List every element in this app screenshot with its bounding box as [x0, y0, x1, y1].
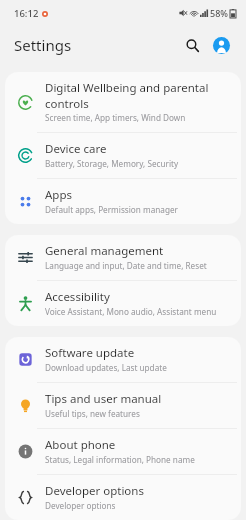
staticText: Screen time, App timers, Wind Down [45, 112, 186, 123]
button[interactable]: Developer options [5, 475, 241, 520]
button[interactable]: General management [5, 235, 241, 280]
staticText: Language and input, Date and time, Reset [45, 260, 207, 271]
button[interactable]: About phone [5, 429, 241, 474]
staticText: 58% [210, 7, 228, 19]
button[interactable]: Device care [5, 133, 241, 178]
staticText: Default apps, Permission manager [45, 204, 178, 215]
staticText: Settings [14, 35, 72, 55]
staticText: About phone [45, 437, 116, 453]
staticText: Accessibility [45, 289, 110, 305]
staticText: Software update [45, 345, 135, 361]
button[interactable]: Digital Wellbeing and parental controls [5, 72, 241, 132]
staticText: Developer options [45, 483, 144, 499]
staticText: Voice Assistant, Mono audio, Assistant m… [45, 306, 217, 317]
button[interactable]: Tips and user manual [5, 383, 241, 428]
button[interactable]: Apps [5, 179, 241, 224]
button[interactable]: Software update [5, 337, 241, 382]
staticText: Tips and user manual [45, 391, 162, 407]
button[interactable]: Search [179, 32, 205, 58]
staticText: Digital Wellbeing and parental controls [45, 80, 229, 111]
button[interactable]: Accessibility [5, 281, 241, 326]
staticText: Download updates, Last update [45, 362, 167, 373]
staticText: General management [45, 243, 164, 259]
staticText: Device care [45, 141, 107, 157]
staticText: Status, Legal information, Phone name [45, 454, 195, 465]
staticText: Battery, Storage, Memory, Security [45, 158, 179, 169]
button[interactable]: Account [208, 32, 234, 58]
staticText: Developer options [45, 500, 116, 511]
staticText: Useful tips, new features [45, 408, 140, 419]
staticText: 16:12 [14, 7, 39, 20]
staticText: Apps [45, 187, 73, 203]
